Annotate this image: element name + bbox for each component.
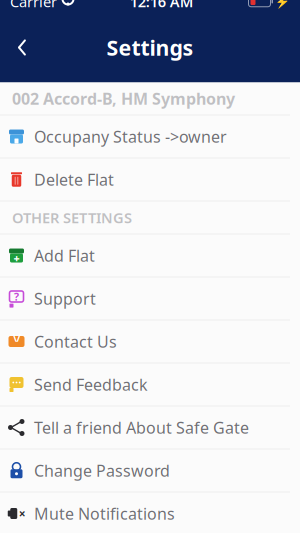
staticText: Support (34, 288, 96, 309)
staticText: Send Feedback (34, 374, 148, 395)
button[interactable]: + (0, 233, 300, 276)
staticText: ⚡ (275, 0, 290, 8)
staticText: Delete Flat (34, 169, 114, 190)
staticText: \/ (12, 330, 20, 345)
staticText: Settings (106, 33, 193, 62)
button[interactable]: ? (0, 276, 300, 319)
staticText: ? (14, 289, 19, 304)
staticText: Tell a friend About Safe Gate (34, 417, 249, 438)
staticText: Carrier (10, 0, 57, 11)
staticText: Contact Us (34, 331, 117, 352)
button[interactable]: Send Feedback (0, 362, 300, 405)
staticText: Add Flat (34, 245, 95, 266)
staticText: OTHER SETTINGS (12, 208, 132, 227)
staticText: Occupany Status ->owner (34, 126, 227, 147)
staticText: 12:16 AM (130, 0, 194, 11)
button[interactable]: Occupany Status ->owner (0, 114, 300, 157)
button[interactable]: Delete Flat (0, 157, 300, 200)
staticText: Change Password (34, 460, 170, 481)
staticText: + (13, 251, 19, 265)
staticText: Mute Notifications (34, 503, 175, 524)
button[interactable]: × (0, 491, 300, 533)
button[interactable]: \/ (0, 319, 300, 362)
staticText: × (19, 505, 26, 521)
button[interactable]: Back (0, 25, 44, 69)
button[interactable]: Tell a friend About Safe Gate (0, 405, 300, 448)
staticText: 002 Accord-B, HM Symphony (12, 88, 235, 109)
button[interactable]: Change Password (0, 448, 300, 491)
